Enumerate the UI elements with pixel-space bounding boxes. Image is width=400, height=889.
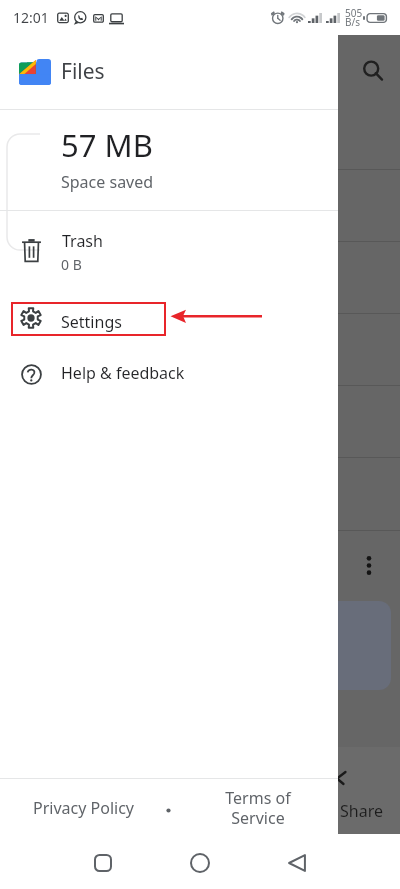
staticText: Files <box>61 57 105 86</box>
button[interactable]: Help & feedback <box>0 345 338 397</box>
button[interactable]: Home <box>180 843 220 883</box>
button[interactable]: Terms of Service <box>203 787 313 828</box>
staticText: Settings <box>61 311 122 333</box>
button[interactable]: Trash <box>0 211 338 273</box>
staticText: Share <box>340 800 383 822</box>
staticText: B/s <box>345 15 361 29</box>
staticText: Trash <box>62 230 103 252</box>
staticText: 505 <box>345 6 363 20</box>
button[interactable]: Files <box>0 35 338 109</box>
button[interactable]: Settings <box>11 302 166 336</box>
staticText: Help & feedback <box>61 362 185 384</box>
button[interactable]: Search <box>350 47 392 89</box>
staticText: 12:01 <box>13 8 49 27</box>
button[interactable]: 57 MB <box>61 124 153 166</box>
staticText: 0 B <box>61 255 82 274</box>
button[interactable]: Recent apps <box>83 843 123 883</box>
button[interactable]: Privacy Policy <box>33 797 134 819</box>
button[interactable]: More options <box>348 543 390 585</box>
button[interactable]: Back <box>277 843 317 883</box>
staticText: Space saved <box>61 171 154 193</box>
